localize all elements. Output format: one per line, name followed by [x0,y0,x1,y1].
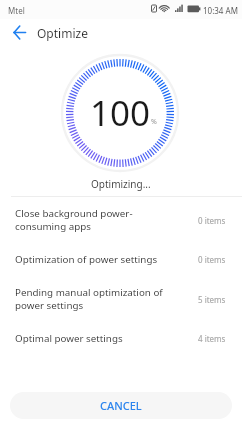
staticText: Optimization of power settings [15,253,198,266]
staticText: Mtel [8,5,25,16]
button[interactable]: Pending manual optimization of power set… [0,276,242,322]
staticText: 4 items [198,333,226,344]
staticText: Optimize [37,25,88,41]
staticText: 100 [90,89,151,137]
staticText: Optimizing... [91,177,151,191]
button[interactable]: Optimization of power settings [0,243,242,276]
button[interactable]: Optimal power settings [0,322,242,355]
staticText: Close background power- consuming apps [15,207,198,233]
button[interactable]: Close background power- consuming apps [0,197,242,243]
staticText: 10:34 AM [203,5,238,16]
staticText: Pending manual optimization of power set… [15,286,198,312]
button[interactable]: Back [5,18,33,46]
staticText: 0 items [198,254,226,265]
button[interactable]: CANCEL [10,392,232,419]
staticText: % [151,117,157,127]
staticText: Optimal power settings [15,332,198,345]
staticText: CANCEL [100,398,142,413]
staticText: 0 items [198,215,226,226]
staticText: 5 items [198,294,226,305]
